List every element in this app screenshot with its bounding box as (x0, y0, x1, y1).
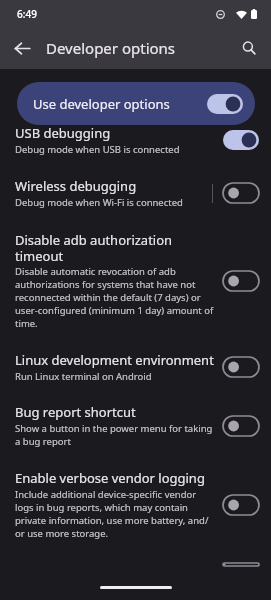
other: Disable adb authorization timeout (223, 271, 259, 291)
staticText: Bug report shortcut (15, 403, 136, 421)
other: Linux development environment (223, 357, 259, 377)
other: Enable view attribute inspection (223, 563, 259, 566)
staticText: Debug mode when Wi-Fi is connected (15, 196, 183, 209)
button[interactable]: Enable verbose vendor logging (0, 458, 271, 551)
button[interactable]: Use developer options (17, 82, 255, 125)
other: Use developer options (207, 94, 243, 114)
staticText: Show a button in the power menu for taki… (15, 422, 217, 448)
button[interactable]: Bug report shortcut (0, 393, 271, 458)
button[interactable]: Back (5, 31, 39, 65)
button[interactable]: Wireless debugging (0, 165, 271, 220)
staticText: Developer options (46, 38, 176, 58)
staticText: Run Linux terminal on Android (15, 370, 152, 383)
button[interactable]: Linux development environment (0, 341, 271, 393)
other: Bug report shortcut (223, 416, 259, 436)
button[interactable]: USB debugging (0, 121, 271, 165)
staticText: Include additional device-specific vendo… (15, 488, 217, 540)
staticText: 6:49 (17, 7, 37, 21)
staticText: USB debugging (15, 124, 111, 142)
staticText: Enable verbose vendor logging (15, 469, 205, 487)
staticText: Use developer options (33, 95, 207, 113)
other: Enable verbose vendor logging (223, 495, 259, 515)
staticText: Debug mode when USB is connected (15, 143, 180, 156)
button[interactable]: Enable view attribute inspection (0, 551, 271, 578)
staticText: Linux development environment (15, 351, 214, 369)
button[interactable]: Search (233, 32, 265, 64)
staticText: Wireless debugging (15, 177, 137, 195)
staticText: Disable adb authorization timeout (15, 231, 217, 264)
staticText: Disable automatic revocation of adb auth… (15, 265, 217, 330)
button[interactable]: Disable adb authorization timeout (0, 220, 271, 341)
other: Wireless debugging (223, 183, 259, 203)
other: USB debugging (223, 130, 259, 150)
